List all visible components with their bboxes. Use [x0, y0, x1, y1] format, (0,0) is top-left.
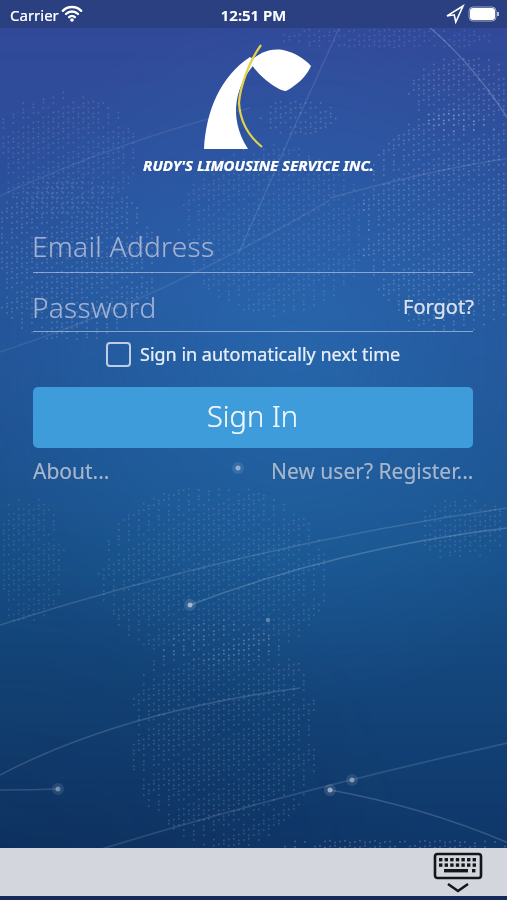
- button[interactable]: About...: [33, 457, 110, 486]
- button[interactable]: [33, 227, 473, 274]
- staticText: RUDY'S LIMOUSINE SERVICE INC.: [5, 155, 507, 175]
- button[interactable]: [33, 287, 473, 333]
- staticText: Password: [32, 288, 157, 326]
- button[interactable]: [434, 848, 482, 896]
- staticText: Sign In: [207, 396, 299, 435]
- staticText: Email Address: [32, 227, 215, 265]
- staticText: Carrier: [10, 5, 59, 25]
- staticText: Sign in automatically next time: [140, 342, 401, 367]
- button[interactable]: Sign In: [33, 387, 473, 448]
- button[interactable]: New user? Register...: [271, 457, 474, 486]
- staticText: About...: [33, 457, 110, 486]
- staticText: Forgot?: [403, 293, 474, 320]
- button[interactable]: Sign in automatically next time: [0, 342, 507, 367]
- button[interactable]: Forgot?: [403, 293, 474, 320]
- staticText: New user? Register...: [271, 457, 474, 486]
- staticText: 12:51 PM: [0, 5, 507, 25]
